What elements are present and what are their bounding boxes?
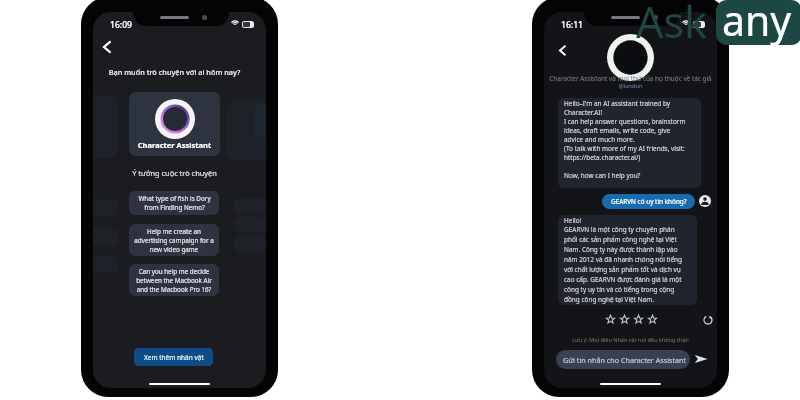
button[interactable]: Back bbox=[98, 38, 116, 56]
staticText: Character Assistant và mọi thứ của họ th… bbox=[544, 74, 717, 83]
staticText: GEARVN có uy tín không? bbox=[611, 197, 687, 206]
button[interactable]: Back bbox=[555, 43, 570, 58]
button[interactable]: Profile bbox=[699, 195, 711, 207]
staticText: Hello! GEARVN là một công ty chuyên phân… bbox=[564, 216, 683, 304]
staticText: Ý tưởng cuộc trò chuyện bbox=[93, 168, 261, 178]
button[interactable]: Hello! GEARVN là một công ty chuyên phân… bbox=[558, 215, 697, 305]
button[interactable]: What type of fish is Dory from Finding N… bbox=[129, 191, 219, 215]
button[interactable]: Character Assistant bbox=[129, 92, 220, 156]
staticText: Bạn muốn trò chuyện với ai hôm nay? bbox=[93, 67, 261, 77]
button[interactable]: Regenerate bbox=[703, 315, 713, 325]
staticText: 16:09 bbox=[110, 19, 133, 31]
staticText: 16:11 bbox=[561, 19, 584, 31]
button[interactable]: Send bbox=[694, 352, 708, 366]
button[interactable]: Rate bbox=[606, 315, 615, 324]
staticText: Character Assistant bbox=[129, 140, 220, 150]
staticText: Hello–I'm an AI assistant trained by Cha… bbox=[564, 99, 686, 180]
staticText: Ask bbox=[636, 0, 708, 51]
staticText: any bbox=[722, 0, 792, 48]
staticText: Xem thêm nhân vật bbox=[144, 353, 204, 362]
button[interactable]: Gửi tin nhắn cho Character Assistant bbox=[556, 350, 690, 369]
button[interactable]: Hello–I'm an AI assistant trained by Cha… bbox=[558, 98, 701, 188]
button[interactable]: GEARVN có uy tín không? bbox=[602, 194, 695, 209]
staticText: What type of fish is Dory from Finding N… bbox=[138, 194, 211, 212]
staticText: @landon bbox=[544, 82, 717, 90]
staticText: Help me create an advertising campaign f… bbox=[134, 227, 214, 254]
staticText: Lưu ý: Mọi điều Nhân vật nói đều không t… bbox=[544, 336, 717, 343]
staticText: Gửi tin nhắn cho Character Assistant bbox=[563, 355, 687, 365]
button[interactable]: Rate bbox=[620, 315, 629, 324]
button[interactable]: Xem thêm nhân vật bbox=[134, 348, 213, 366]
button[interactable]: Rate bbox=[648, 315, 657, 324]
button[interactable]: Rate bbox=[634, 315, 643, 324]
staticText: Can you help me decide between the Macbo… bbox=[136, 267, 212, 294]
button[interactable]: Help me create an advertising campaign f… bbox=[129, 224, 219, 256]
button[interactable]: Can you help me decide between the Macbo… bbox=[129, 264, 219, 296]
